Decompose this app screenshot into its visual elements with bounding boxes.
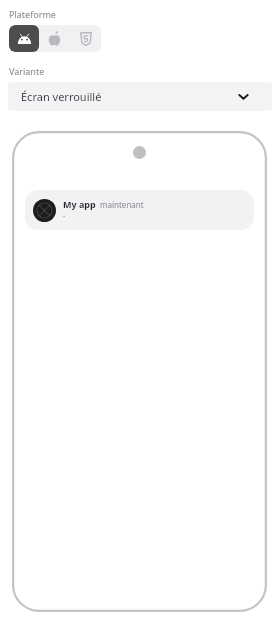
staticText: maintenant xyxy=(100,199,144,210)
button[interactable]: Web xyxy=(70,25,101,52)
staticText: Plateforme xyxy=(9,8,56,20)
button[interactable]: My app xyxy=(25,190,254,230)
staticText: - xyxy=(63,211,66,221)
staticText: My app xyxy=(63,198,96,210)
staticText: Variante xyxy=(9,65,45,77)
staticText: Écran verrouillé xyxy=(21,89,102,104)
button[interactable]: Écran verrouillé xyxy=(8,82,272,111)
button[interactable]: Android xyxy=(9,25,39,52)
button[interactable]: iOS xyxy=(39,25,70,52)
